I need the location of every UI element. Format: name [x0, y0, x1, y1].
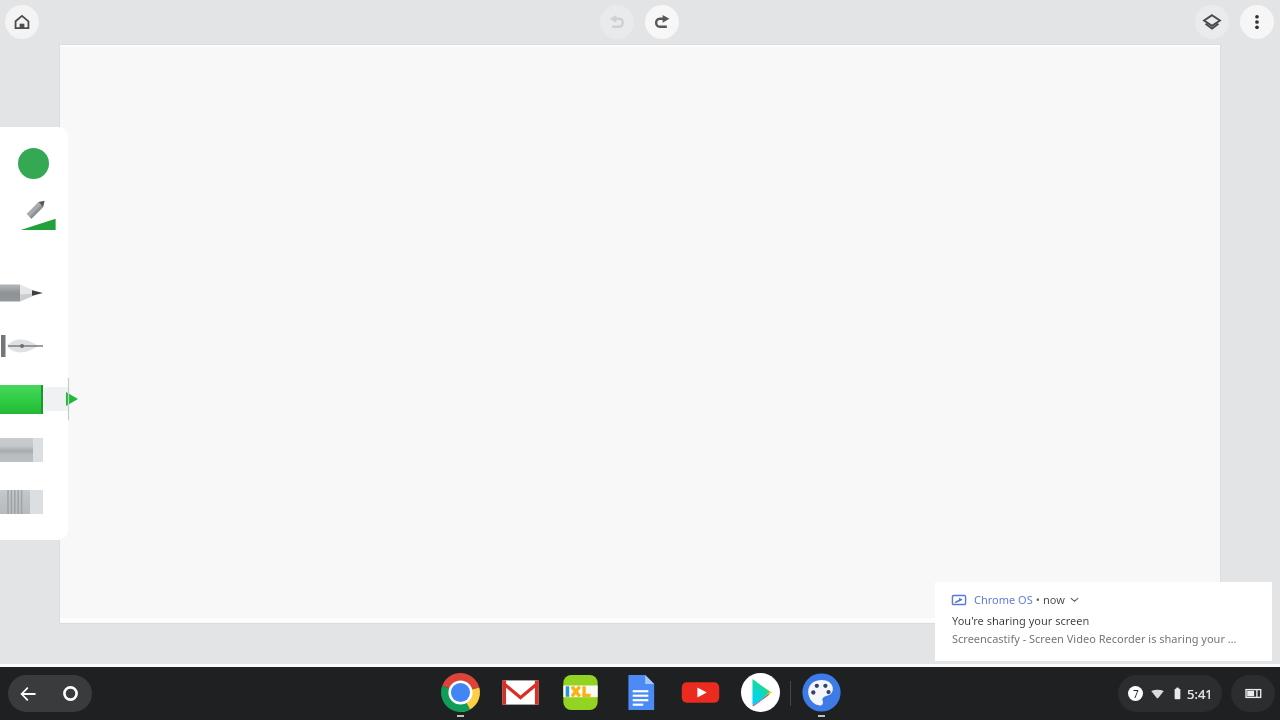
staticText: Chrome OS: [974, 592, 1033, 607]
staticText: 7: [1133, 687, 1139, 701]
button[interactable]: Marker selected: [0, 378, 82, 420]
button[interactable]: IXL: [550, 667, 610, 720]
button[interactable]: More options: [1240, 5, 1274, 39]
staticText: You're sharing your screen: [952, 613, 1090, 628]
button[interactable]: Eraser: [0, 430, 60, 470]
staticText: •: [1033, 592, 1043, 607]
button[interactable]: Gmail: [490, 667, 550, 720]
button[interactable]: Chrome: [430, 667, 490, 720]
button[interactable]: Redo: [645, 5, 679, 39]
button[interactable]: Back: [8, 675, 48, 712]
button[interactable]: Layers: [1195, 5, 1229, 39]
staticText: now: [1043, 592, 1065, 607]
button[interactable]: Play Store: [730, 667, 790, 720]
button[interactable]: Screen capture: [1231, 675, 1275, 712]
button[interactable]: Home: [5, 5, 39, 39]
staticText: 5:41: [1187, 685, 1213, 703]
button[interactable]: Status tray: [1118, 675, 1222, 712]
button[interactable]: Undo: [600, 5, 634, 39]
button[interactable]: YouTube: [670, 667, 730, 720]
button[interactable]: Pen: [0, 325, 60, 367]
button[interactable]: Google Docs: [610, 667, 670, 720]
button[interactable]: Pencil: [0, 272, 60, 314]
button[interactable]: Paint: [791, 667, 851, 720]
button[interactable]: Eraser stroke: [0, 482, 60, 522]
button[interactable]: Chrome OS: [935, 582, 1272, 661]
button[interactable]: Stroke size: [20, 199, 56, 231]
button[interactable]: Launcher: [48, 675, 92, 712]
button[interactable]: Colour green: [18, 148, 49, 179]
staticText: Screencastify - Screen Video Recorder is…: [952, 631, 1237, 646]
